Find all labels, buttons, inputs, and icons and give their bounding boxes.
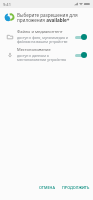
button[interactable]: Переключить разрешение [74,32,87,42]
staticText: ПРОДОЛЖИТЬ [62,185,90,190]
staticText: 9:41 [3,2,11,7]
staticText: Местоположение [17,47,51,52]
button[interactable]: ОТМЕНА [36,183,58,192]
staticText: доступ к фото, мультимедиа и файлам на в… [17,35,69,44]
button[interactable]: Местоположение [0,47,93,62]
staticText: ОТМЕНА [39,185,55,190]
button[interactable]: Файлы и медиаконтент [0,29,93,44]
button[interactable]: ПРОДОЛЖИТЬ [59,183,93,192]
button[interactable]: Переключить разрешение [74,50,87,60]
staticText: Выберите разрешения для приложения avail… [17,12,78,24]
staticText: доступ к данным о местоположении устройс… [17,53,66,62]
staticText: Файлы и медиаконтент [17,29,63,34]
